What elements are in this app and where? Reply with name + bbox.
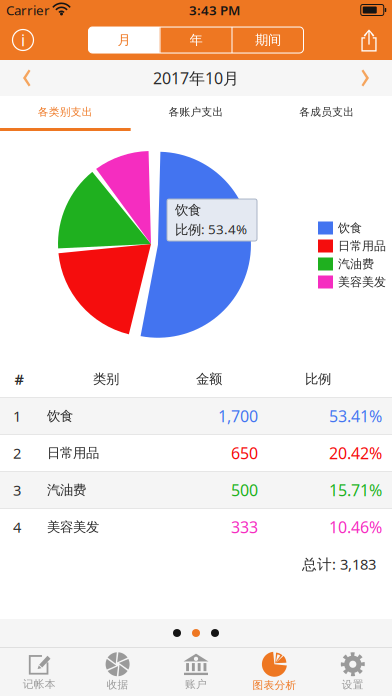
staticText: 10.46% bbox=[329, 516, 382, 538]
button[interactable]: 各账户支出 bbox=[131, 96, 261, 131]
staticText: 饮食 bbox=[175, 202, 201, 218]
staticText: 53.41% bbox=[329, 405, 382, 427]
staticText: 2017年10月 bbox=[153, 67, 239, 89]
staticText: 1 bbox=[13, 406, 21, 426]
button[interactable]: 账户 bbox=[157, 648, 235, 696]
staticText: Carrier bbox=[6, 1, 50, 19]
button[interactable]: Share bbox=[352, 23, 386, 57]
staticText: i bbox=[21, 29, 25, 51]
staticText: 汽油费 bbox=[47, 482, 86, 498]
staticText: 美容美发 bbox=[338, 275, 386, 289]
staticText: 4 bbox=[13, 517, 21, 537]
button[interactable]: 月 bbox=[88, 27, 159, 53]
staticText: 各账户支出 bbox=[168, 105, 223, 118]
staticText: 年 bbox=[189, 32, 202, 48]
staticText: 2 bbox=[13, 443, 21, 463]
button[interactable]: 图表分析 bbox=[235, 648, 314, 696]
button[interactable]: 期间 bbox=[232, 27, 303, 53]
staticText: 图表分析 bbox=[252, 679, 296, 692]
button[interactable]: 各类别支出 bbox=[0, 96, 131, 131]
staticText: 15.71% bbox=[329, 479, 382, 501]
staticText: 汽油费 bbox=[338, 257, 374, 271]
staticText: 3:43 PM bbox=[189, 1, 240, 19]
staticText: 3 bbox=[13, 480, 21, 500]
button[interactable]: 各成员支出 bbox=[261, 96, 392, 131]
staticText: 1,700 bbox=[218, 405, 258, 427]
staticText: 500 bbox=[231, 479, 258, 501]
staticText: 设置 bbox=[342, 678, 364, 691]
button[interactable]: Next month bbox=[344, 60, 384, 96]
staticText: 饮食 bbox=[47, 408, 73, 424]
staticText: 各成员支出 bbox=[299, 105, 354, 118]
button[interactable]: 年 bbox=[160, 27, 231, 53]
button[interactable]: Previous month bbox=[8, 60, 48, 96]
staticText: 比例 bbox=[305, 371, 331, 387]
staticText: 期间 bbox=[255, 32, 281, 48]
staticText: 收据 bbox=[107, 678, 129, 691]
staticText: 美容美发 bbox=[47, 519, 99, 535]
button[interactable]: 记帐本 bbox=[0, 648, 78, 696]
staticText: 账户 bbox=[185, 678, 207, 691]
staticText: 记帐本 bbox=[23, 678, 56, 691]
staticText: 金额 bbox=[196, 371, 222, 387]
staticText: 饮食 bbox=[338, 221, 362, 235]
button[interactable]: 设置 bbox=[314, 648, 392, 696]
staticText: 日常用品 bbox=[47, 445, 99, 461]
staticText: 各类别支出 bbox=[38, 105, 93, 118]
staticText: 650 bbox=[231, 442, 258, 464]
button[interactable]: 收据 bbox=[78, 648, 157, 696]
staticText: 333 bbox=[231, 516, 258, 538]
staticText: 20.42% bbox=[329, 442, 382, 464]
staticText: 总计: 3,183 bbox=[302, 554, 376, 574]
staticText: 月 bbox=[117, 32, 130, 48]
staticText: 日常用品 bbox=[338, 239, 386, 253]
staticText: 比例: 53.4% bbox=[175, 220, 247, 238]
staticText: # bbox=[14, 369, 23, 389]
button[interactable]: Info bbox=[6, 23, 40, 57]
staticText: 类别 bbox=[93, 371, 119, 387]
